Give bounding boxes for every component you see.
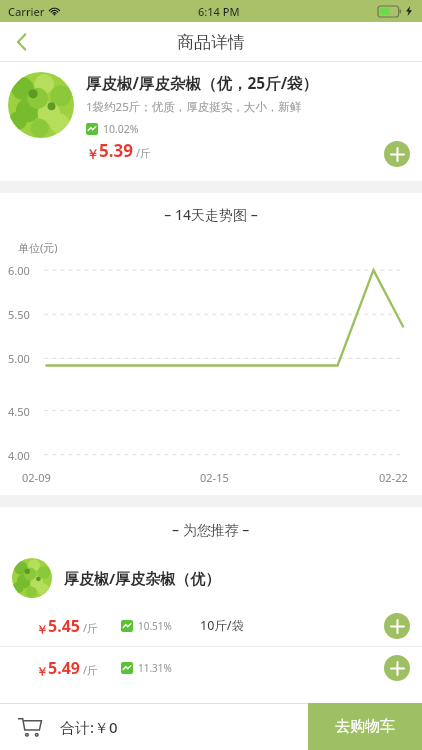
staticText: 去购物车 <box>335 717 395 736</box>
staticText: 4.00 <box>8 448 30 463</box>
staticText: – 为您推荐 – <box>172 520 250 539</box>
staticText: 02-22 <box>379 470 408 485</box>
staticText: 5.45 <box>48 615 80 637</box>
button[interactable]: ￥ <box>0 647 422 688</box>
staticText: ￥ <box>36 622 48 637</box>
button[interactable]: Back <box>0 22 44 62</box>
staticText: /斤 <box>83 620 99 635</box>
button[interactable]: ￥ <box>0 605 422 646</box>
staticText: /斤 <box>136 145 152 160</box>
button[interactable]: Add to cart <box>384 655 410 681</box>
staticText: 10.51% <box>138 619 172 633</box>
staticText: 02-09 <box>22 470 51 485</box>
staticText: 6.00 <box>8 263 30 278</box>
button[interactable]: Add to cart <box>384 613 410 639</box>
staticText: 商品详情 <box>177 32 245 53</box>
staticText: 10.02% <box>103 122 139 136</box>
button[interactable]: Add to cart <box>384 141 410 167</box>
staticText: 5.49 <box>48 657 80 679</box>
staticText: 5.00 <box>8 351 30 366</box>
staticText: 6:14 PM <box>198 4 240 19</box>
staticText: 合计:￥0 <box>60 717 118 737</box>
staticText: – 14天走势图 – <box>0 205 422 224</box>
staticText: ￥ <box>86 146 99 162</box>
staticText: 10斤/袋 <box>200 617 245 634</box>
button[interactable]: 去购物车 <box>308 703 422 750</box>
staticText: 单位(元) <box>18 240 58 255</box>
staticText: 1袋约25斤；优质，厚皮挺实，大小，新鲜 <box>86 99 302 115</box>
button[interactable]: 厚皮椒/厚皮杂椒（优，25斤/袋） <box>0 62 422 181</box>
staticText: ￥ <box>36 664 48 679</box>
staticText: 厚皮椒/厚皮杂椒（优） <box>64 568 221 588</box>
staticText: 11.31% <box>138 661 172 675</box>
button[interactable]: 厚皮椒/厚皮杂椒（优） <box>0 551 422 605</box>
staticText: 5.50 <box>8 307 30 322</box>
button[interactable]: Cart <box>0 703 60 750</box>
staticText: 厚皮椒/厚皮杂椒（优，25斤/袋） <box>86 72 319 93</box>
staticText: Carrier <box>8 4 45 19</box>
staticText: 4.50 <box>8 404 30 419</box>
staticText: 02-15 <box>200 470 229 485</box>
staticText: 5.39 <box>99 139 133 162</box>
staticText: /斤 <box>83 662 99 677</box>
